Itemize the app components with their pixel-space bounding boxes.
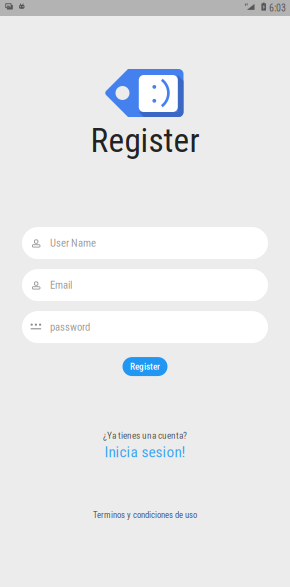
staticText: Email xyxy=(50,279,72,291)
staticText: Terminos y condiciones de uso xyxy=(93,510,197,520)
staticText: ¿Ya tienes una cuenta? xyxy=(103,430,187,441)
staticText: Register xyxy=(90,121,199,160)
button[interactable]: Inicia sesion! xyxy=(104,443,185,461)
button[interactable]: Register xyxy=(122,357,167,376)
staticText: User Name xyxy=(50,237,96,249)
button[interactable]: User Name xyxy=(22,227,268,259)
button[interactable]: password xyxy=(22,311,268,343)
staticText: Inicia sesion! xyxy=(104,443,185,461)
staticText: password xyxy=(50,321,90,333)
button[interactable]: Email xyxy=(22,269,268,301)
button[interactable]: Terminos y condiciones de uso xyxy=(93,510,197,520)
staticText: 6:03 xyxy=(269,2,286,14)
staticText: Register xyxy=(130,361,160,372)
